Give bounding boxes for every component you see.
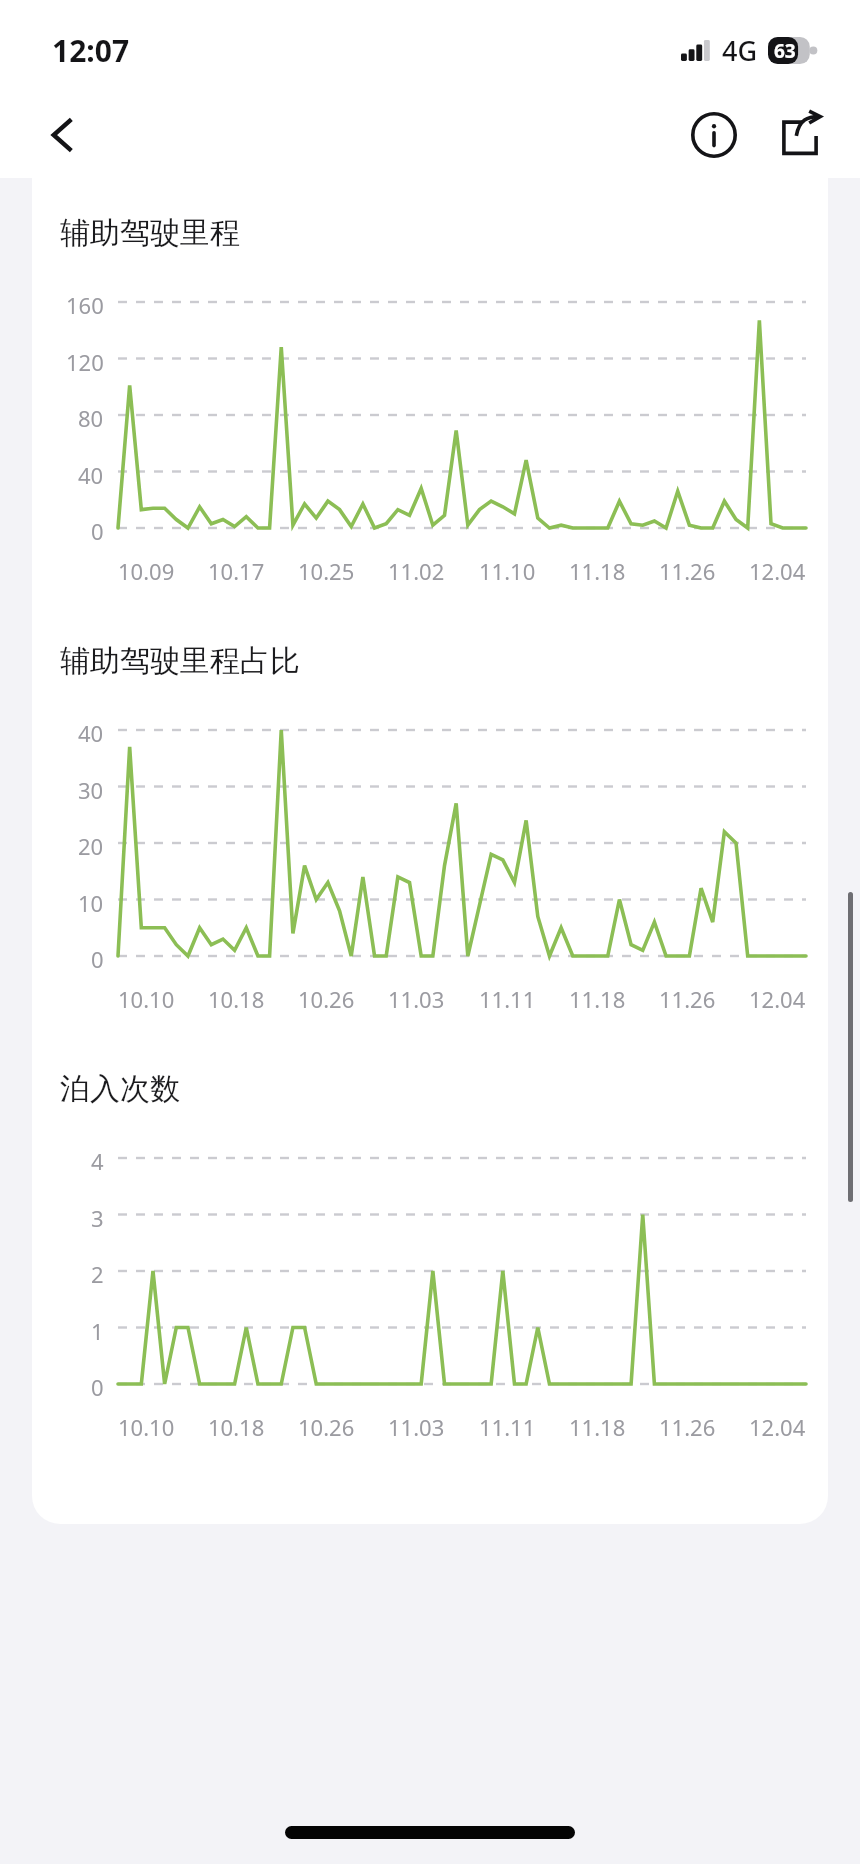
staticText: 3 <box>91 1203 104 1227</box>
staticText: 10.26 <box>298 1412 355 1442</box>
staticText: 2 <box>91 1259 104 1283</box>
staticText: 63 <box>774 38 796 64</box>
staticText: 0 <box>91 944 104 968</box>
staticText: 12:07 <box>52 30 130 71</box>
staticText: 11.18 <box>569 984 626 1014</box>
staticText: 11.11 <box>479 984 536 1014</box>
staticText: 10.26 <box>298 984 355 1014</box>
staticText: 4 <box>91 1146 104 1170</box>
staticText: 40 <box>78 460 104 484</box>
staticText: 11.26 <box>659 556 716 586</box>
staticText: 10.17 <box>208 556 265 586</box>
staticText: 11.11 <box>479 1412 536 1442</box>
staticText: 泊入次数 <box>60 1070 180 1108</box>
button[interactable]: Info <box>682 103 746 167</box>
staticText: 4G <box>722 32 758 69</box>
staticText: 12.04 <box>749 984 806 1014</box>
staticText: 30 <box>78 775 104 799</box>
staticText: 11.03 <box>388 1412 445 1442</box>
button[interactable]: Share <box>768 103 832 167</box>
staticText: 辅助驾驶里程 <box>60 214 240 252</box>
staticText: 120 <box>66 347 104 371</box>
staticText: 11.18 <box>569 1412 626 1442</box>
staticText: 12.04 <box>749 556 806 586</box>
staticText: 1 <box>91 1316 104 1340</box>
staticText: 10.10 <box>118 984 175 1014</box>
staticText: 11.02 <box>388 556 445 586</box>
staticText: 160 <box>66 290 104 314</box>
button[interactable]: Back <box>32 105 92 165</box>
staticText: 10.09 <box>118 556 175 586</box>
staticText: 11.03 <box>388 984 445 1014</box>
staticText: 11.10 <box>479 556 536 586</box>
staticText: 10.10 <box>118 1412 175 1442</box>
staticText: 10.25 <box>298 556 355 586</box>
staticText: 12.04 <box>749 1412 806 1442</box>
staticText: 辅助驾驶里程占比 <box>60 642 300 680</box>
staticText: 0 <box>91 1372 104 1396</box>
staticText: 10.18 <box>208 1412 265 1442</box>
staticText: 10.18 <box>208 984 265 1014</box>
staticText: 10 <box>78 888 104 912</box>
staticText: 11.26 <box>659 1412 716 1442</box>
staticText: 20 <box>78 831 104 855</box>
staticText: 80 <box>78 403 104 427</box>
staticText: 40 <box>78 718 104 742</box>
staticText: 11.18 <box>569 556 626 586</box>
staticText: 11.26 <box>659 984 716 1014</box>
staticText: 0 <box>91 516 104 540</box>
